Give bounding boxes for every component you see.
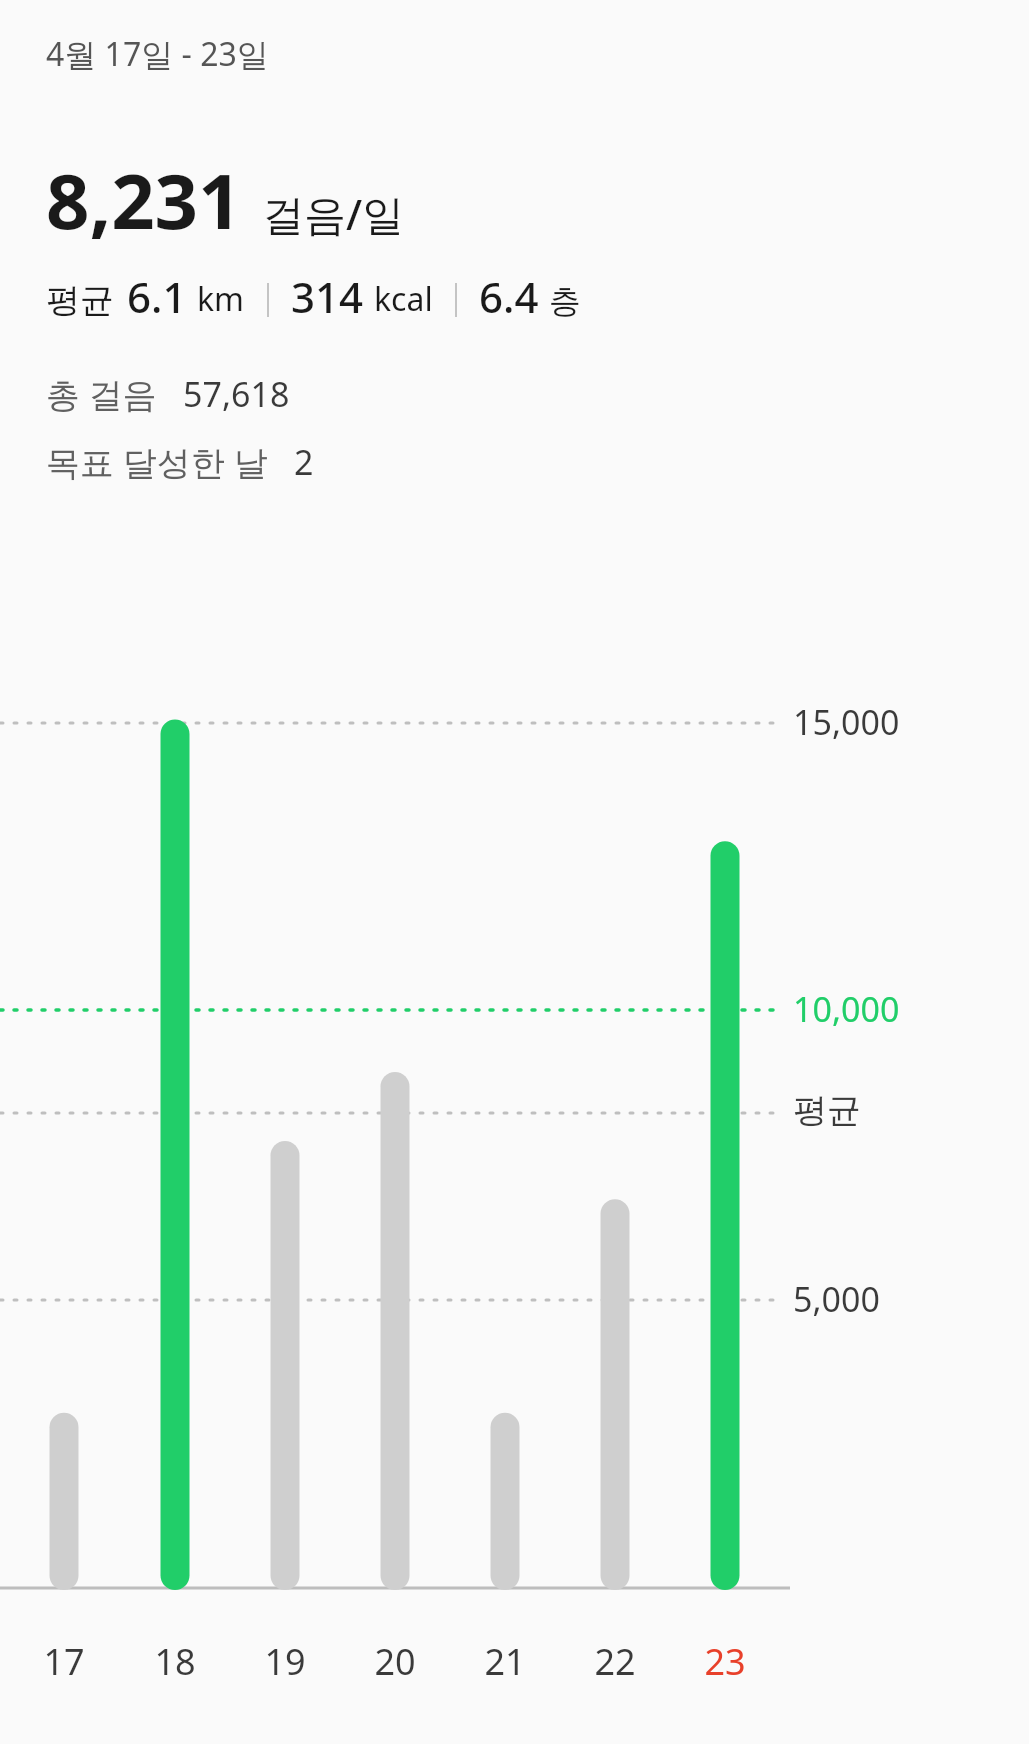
staticText: kcal — [374, 277, 433, 321]
staticText: 5,000 — [793, 1276, 880, 1322]
staticText: 2 — [294, 439, 314, 485]
staticText: 6.1 — [127, 268, 187, 325]
staticText: 17 — [24, 1637, 104, 1686]
staticText: 4월 17일 - 23일 — [46, 32, 269, 76]
staticText: 23 — [685, 1637, 765, 1686]
staticText: 57,618 — [183, 371, 290, 417]
button[interactable]: 20 — [355, 1637, 435, 1686]
staticText: 21 — [465, 1637, 545, 1686]
staticText: 걸음/일 — [262, 185, 405, 242]
staticText: 22 — [575, 1637, 655, 1686]
staticText: 평균 — [46, 279, 114, 322]
button[interactable]: 17 — [24, 1637, 104, 1686]
staticText: 목표 달성한 날 — [46, 439, 268, 485]
button[interactable]: 21 — [465, 1637, 545, 1686]
staticText: 6.4 — [479, 268, 539, 325]
button[interactable]: 18 — [135, 1637, 215, 1686]
staticText: km — [197, 277, 245, 321]
staticText: 20 — [355, 1637, 435, 1686]
staticText: 8,231 — [46, 148, 242, 252]
staticText: 19 — [245, 1637, 325, 1686]
button[interactable]: 22 — [575, 1637, 655, 1686]
staticText: 15,000 — [793, 699, 900, 745]
staticText: 314 — [291, 268, 364, 325]
staticText: 층 — [549, 281, 581, 321]
button[interactable]: 23 — [685, 1637, 765, 1686]
staticText: 평균 — [793, 1089, 861, 1132]
staticText: 총 걸음 — [46, 371, 157, 417]
staticText: 18 — [135, 1637, 215, 1686]
staticText: 10,000 — [793, 986, 900, 1032]
button[interactable]: 19 — [245, 1637, 325, 1686]
